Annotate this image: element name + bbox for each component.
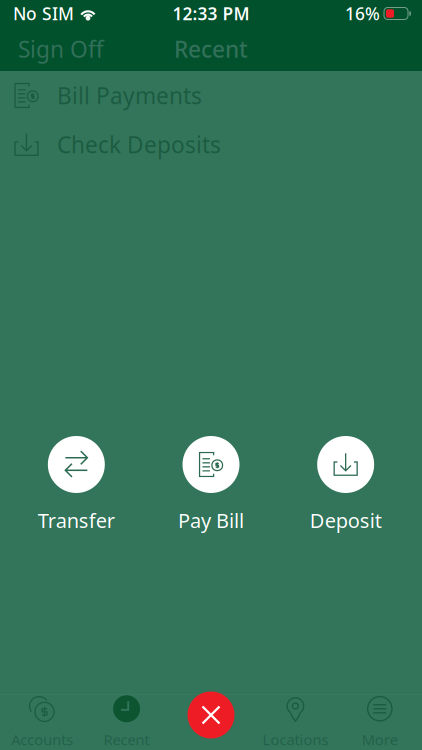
staticText: Bill Payments [57, 80, 202, 110]
button[interactable]: Sign Off [0, 27, 122, 71]
button[interactable]: Recent [84, 694, 169, 750]
staticText: More [362, 730, 398, 749]
staticText: Check Deposits [57, 129, 221, 159]
staticText: Transfer [38, 507, 115, 534]
button[interactable]: Locations [253, 694, 338, 750]
button[interactable]: Deposit [278, 436, 413, 534]
staticText: 12:33 PM [172, 2, 249, 25]
staticText: Pay Bill [178, 507, 244, 534]
button[interactable]: More [338, 694, 422, 750]
button[interactable] [169, 694, 253, 750]
button[interactable]: Accounts [0, 694, 84, 750]
button[interactable]: Close [187, 691, 234, 738]
staticText: No SIM [13, 2, 74, 25]
button[interactable]: Transfer [9, 436, 144, 534]
staticText: Locations [262, 730, 328, 749]
staticText: 16% [345, 2, 380, 25]
staticText: Recent [104, 730, 150, 749]
staticText: Sign Off [18, 34, 104, 64]
button[interactable]: Check Deposits [0, 120, 422, 169]
staticText: Accounts [11, 730, 73, 749]
button[interactable]: Bill Payments [0, 71, 422, 120]
staticText: Deposit [310, 507, 382, 534]
button[interactable]: Pay Bill [144, 436, 278, 534]
staticText: Recent [174, 34, 248, 64]
